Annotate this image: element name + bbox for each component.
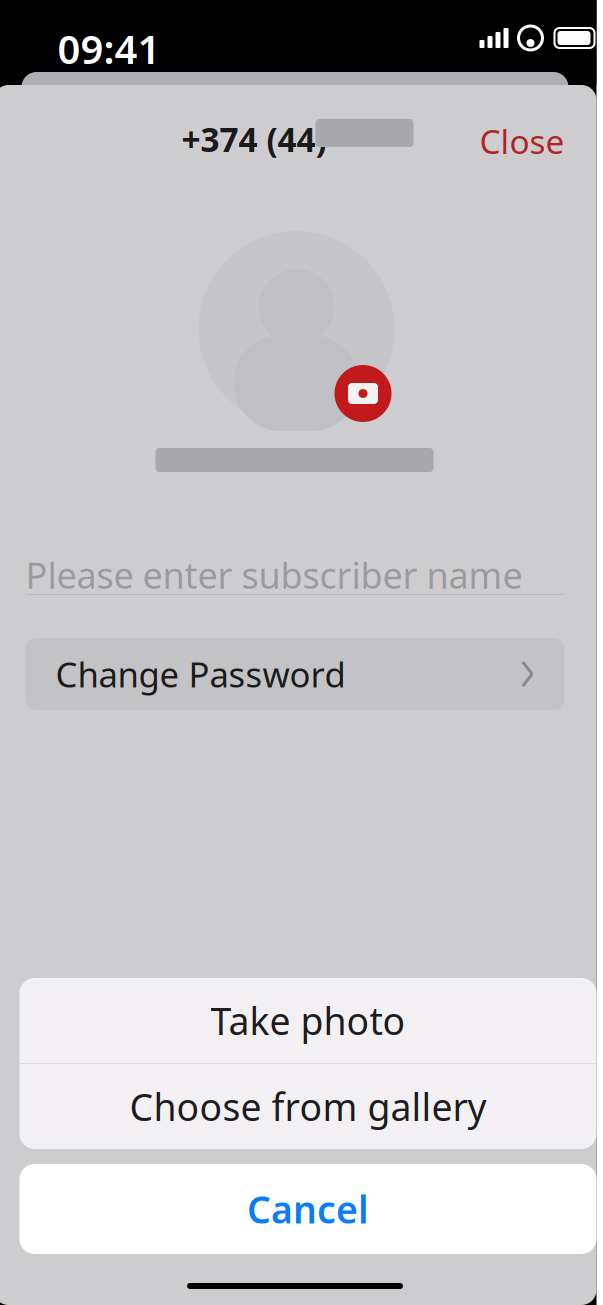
staticText: Please enter subscriber name [25,551,522,599]
button[interactable]: Cancel [19,1164,596,1254]
button[interactable]: Choose from gallery [19,1064,596,1149]
staticText: Cancel [247,1184,369,1234]
button[interactable]: Change profile photo [198,233,394,429]
button[interactable]: Take photo [19,978,596,1063]
staticText: Take photo [210,996,405,1045]
staticText: +374 (44) [181,117,326,161]
staticText: 09:41 [57,22,160,75]
staticText: Choose from gallery [129,1082,486,1131]
staticText: Close [479,119,564,163]
button[interactable]: Change Password [25,638,564,710]
button[interactable]: Close [463,111,580,171]
staticText: Change Password [55,651,345,697]
